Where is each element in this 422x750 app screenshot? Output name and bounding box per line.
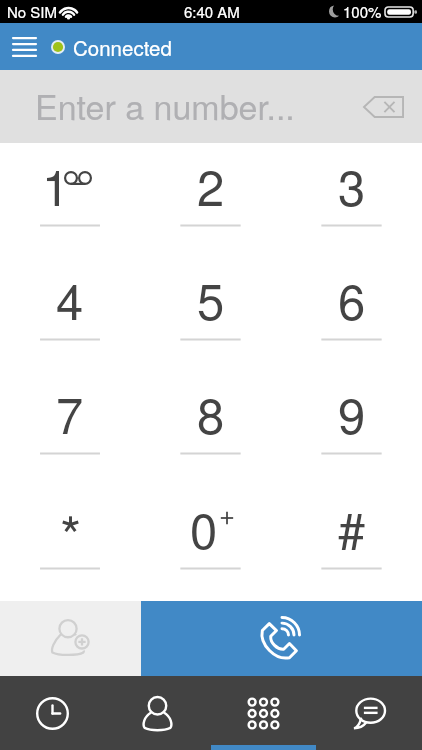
staticText: Connected — [73, 32, 172, 61]
staticText: No SIM — [7, 1, 58, 22]
button[interactable]: Messages — [316, 676, 422, 750]
staticText: 0 — [190, 493, 218, 563]
staticText: 4 — [56, 264, 84, 334]
staticText: Enter a number... — [35, 81, 295, 130]
button[interactable]: 3 — [281, 143, 422, 257]
button[interactable]: Add contact — [0, 601, 141, 676]
button[interactable] — [0, 486, 140, 601]
button[interactable]: 0 — [140, 486, 281, 601]
staticText: 8 — [197, 378, 225, 448]
button[interactable]: 9 — [281, 371, 422, 486]
staticText: 6:40 AM — [184, 1, 240, 22]
button[interactable]: Enter a number... — [0, 70, 422, 143]
button[interactable]: # — [281, 486, 422, 601]
button[interactable]: Call — [141, 601, 422, 676]
button[interactable]: 6 — [281, 257, 422, 371]
staticText: 3 — [338, 150, 366, 220]
staticText: 2 — [197, 150, 225, 220]
button[interactable]: Menu — [0, 23, 48, 70]
staticText: 1 — [42, 150, 70, 220]
staticText: 7 — [56, 378, 84, 448]
staticText: 9 — [338, 378, 366, 448]
button[interactable]: 4 — [0, 257, 140, 371]
staticText: 100% — [343, 1, 382, 22]
button[interactable]: 8 — [140, 371, 281, 486]
staticText: # — [338, 493, 366, 563]
button[interactable]: Contacts — [105, 676, 210, 750]
staticText: 6 — [338, 264, 366, 334]
button[interactable]: 7 — [0, 371, 140, 486]
button[interactable]: Dialpad — [210, 676, 316, 750]
button[interactable]: 1 — [0, 143, 140, 257]
button[interactable]: Backspace — [356, 85, 410, 129]
button[interactable]: 5 — [140, 257, 281, 371]
button[interactable]: Recents — [0, 676, 105, 750]
staticText: 5 — [197, 264, 225, 334]
button[interactable]: 2 — [140, 143, 281, 257]
